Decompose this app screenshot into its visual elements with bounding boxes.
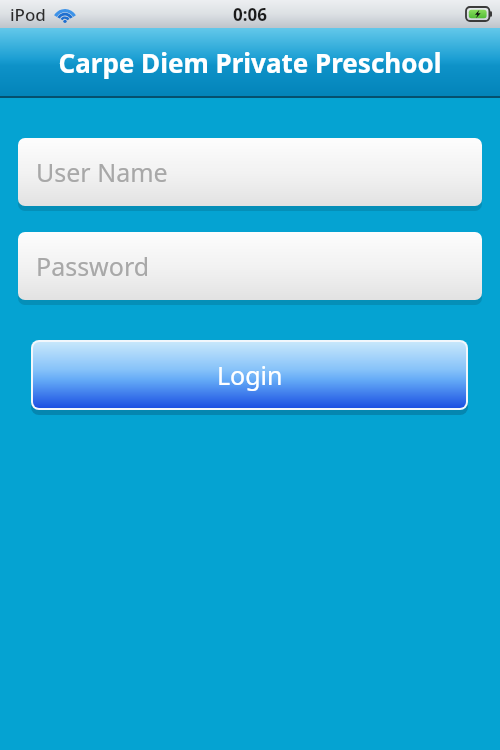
staticText: User Name	[36, 155, 168, 189]
button[interactable]: User Name	[18, 138, 482, 206]
staticText: iPod	[10, 3, 46, 26]
button[interactable]: Password	[18, 232, 482, 300]
button[interactable]: Login	[31, 340, 468, 410]
staticText: Carpe Diem Private Preschool	[0, 45, 500, 80]
staticText: Password	[36, 249, 150, 283]
staticText: Login	[217, 358, 283, 392]
staticText: 0:06	[233, 3, 267, 26]
